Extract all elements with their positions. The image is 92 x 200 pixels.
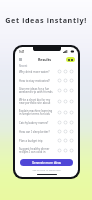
staticText: Results (23, 57, 66, 62)
button[interactable]: Action (62, 148, 68, 153)
button[interactable]: Action (62, 129, 68, 134)
button[interactable]: Action (68, 69, 74, 74)
button[interactable]: Action (68, 148, 74, 153)
button[interactable]: Action (62, 78, 68, 83)
staticText: Generate more ideas (32, 161, 61, 165)
staticText: Suggest healthy dinner recipes I can coo… (19, 147, 53, 154)
button[interactable]: Action (56, 129, 62, 134)
button[interactable]: Action (62, 88, 68, 93)
staticText: How can I sleep better? (19, 130, 53, 134)
button[interactable]: Action (62, 99, 68, 104)
staticText: Give me ideas for a fun weekend trip wit… (19, 87, 53, 94)
button[interactable]: Action (62, 69, 68, 74)
button[interactable]: Give me ideas for a fun weekend trip wit… (15, 85, 78, 96)
staticText: See all your AI ideas here (15, 168, 78, 171)
button[interactable]: Action (56, 99, 62, 104)
staticText: Write a short bio for my new portfolio s… (19, 98, 53, 105)
button[interactable]: Action (62, 138, 68, 143)
staticText: Plan a budget trip (19, 139, 53, 143)
button[interactable]: Profile (66, 57, 75, 62)
staticText: How to stay motivated? (19, 79, 53, 83)
staticText: Get ideas instantly! (0, 15, 92, 25)
button[interactable]: Action (56, 110, 62, 115)
button[interactable]: Menu (18, 57, 23, 62)
button[interactable]: Suggest healthy dinner recipes I can coo… (15, 145, 78, 156)
button[interactable]: How to stay motivated? (15, 76, 78, 85)
button[interactable]: Action (56, 138, 62, 143)
button[interactable]: Action (68, 138, 74, 143)
button[interactable]: Action (68, 78, 74, 83)
button[interactable]: Action (56, 120, 62, 125)
button[interactable]: Action (68, 129, 74, 134)
button[interactable]: Catchy bakery names? (15, 118, 78, 127)
button[interactable]: Explain machine learning in simple terms… (15, 107, 78, 118)
button[interactable]: Generate more ideas (20, 159, 73, 166)
button[interactable]: Write a short bio for my new portfolio s… (15, 96, 78, 107)
button[interactable]: Action (62, 120, 68, 125)
button[interactable]: Action (56, 69, 62, 74)
button[interactable]: Action (56, 148, 62, 153)
staticText: Catchy bakery names? (19, 121, 53, 125)
button[interactable]: Action (62, 110, 68, 115)
button[interactable]: Action (56, 78, 62, 83)
staticText: Explain machine learning in simple terms… (19, 109, 53, 116)
button[interactable]: Action (68, 120, 74, 125)
button[interactable]: Action (56, 88, 62, 93)
staticText: 9:41 (19, 50, 25, 54)
staticText: Why drink more water? (19, 70, 53, 74)
button[interactable]: Action (68, 99, 74, 104)
button[interactable]: Action (68, 88, 74, 93)
button[interactable]: How can I sleep better? (15, 127, 78, 136)
staticText: Recent (19, 64, 28, 67)
button[interactable]: Plan a budget trip (15, 136, 78, 145)
button[interactable]: Action (68, 110, 74, 115)
button[interactable]: Why drink more water? (15, 67, 78, 76)
